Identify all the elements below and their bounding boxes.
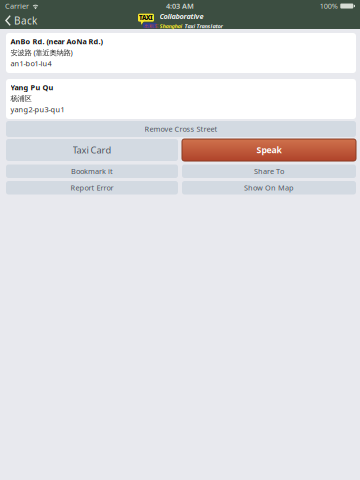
staticText: Back (14, 14, 37, 27)
staticText: 4:03 AM (166, 1, 194, 11)
staticText: AnBo Rd. (near AoNa Rd.) (10, 36, 102, 46)
button[interactable]: Speak (182, 139, 356, 161)
staticText: Remove Cross Street (144, 124, 217, 134)
staticText: 杨浦区 (10, 94, 31, 103)
staticText: Bookmark it (71, 166, 113, 176)
staticText: 安波路 (靠近奥纳路) (10, 47, 72, 57)
staticText: Collaborative (159, 11, 203, 21)
staticText: Taxi Translator (184, 22, 222, 30)
button[interactable]: Show On Map (182, 181, 356, 194)
staticText: Yang Pu Qu (10, 82, 53, 92)
button[interactable]: Remove Cross Street (6, 121, 356, 137)
button[interactable]: Back (0, 12, 45, 29)
staticText: Show On Map (244, 183, 294, 193)
staticText: Shanghai (159, 22, 182, 30)
button[interactable]: Taxi Card (6, 139, 178, 161)
staticText: Carrier (5, 1, 29, 11)
staticText: 出租车 (144, 23, 159, 29)
button[interactable]: Report Error (6, 181, 178, 194)
staticText: Taxi Card (72, 144, 111, 156)
staticText: an1-bo1-lu4 (10, 58, 51, 68)
button[interactable]: Bookmark it (6, 164, 178, 178)
staticText: Share To (254, 166, 284, 176)
staticText: 100% (320, 1, 338, 11)
staticText: Speak (256, 144, 281, 156)
staticText: Report Error (70, 183, 113, 193)
staticText: TAXI (139, 13, 153, 22)
button[interactable]: Share To (182, 164, 356, 178)
staticText: yang2-pu3-qu1 (10, 104, 64, 114)
